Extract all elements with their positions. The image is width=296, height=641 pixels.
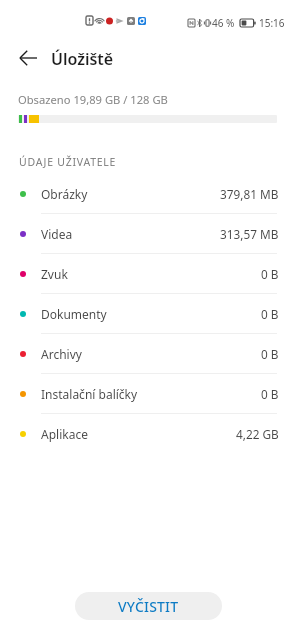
button[interactable]: Videa xyxy=(0,214,296,254)
staticText: Dokumenty xyxy=(41,306,107,322)
staticText: 0 B xyxy=(261,386,279,402)
button[interactable]: Back xyxy=(13,43,43,73)
staticText: 0 B xyxy=(261,266,279,282)
staticText: ÚDAJE UŽIVATELE xyxy=(19,155,117,169)
button[interactable]: Aplikace xyxy=(0,414,296,454)
staticText: Videa xyxy=(41,226,73,242)
staticText: VYČISTIT xyxy=(118,597,179,616)
staticText: Obrázky xyxy=(41,186,88,202)
button[interactable]: Dokumenty xyxy=(0,294,296,334)
button[interactable]: Obrázky xyxy=(0,174,296,214)
staticText: 46 % xyxy=(212,16,235,30)
staticText: Obsazeno 19,89 GB / 128 GB xyxy=(18,92,168,107)
staticText: Archivy xyxy=(41,346,82,362)
staticText: Zvuk xyxy=(41,266,68,282)
button[interactable]: VYČISTIT xyxy=(75,592,222,620)
staticText: Instalační balíčky xyxy=(41,386,138,402)
staticText: 0 B xyxy=(261,306,279,322)
staticText: 0 B xyxy=(261,346,279,362)
staticText: Aplikace xyxy=(41,426,88,442)
button[interactable]: Archivy xyxy=(0,334,296,374)
staticText: 4,22 GB xyxy=(236,426,279,442)
staticText: 313,57 MB xyxy=(220,226,279,242)
staticText: Úložiště xyxy=(51,48,114,70)
staticText: 15:16 xyxy=(259,16,285,30)
button[interactable]: Instalační balíčky xyxy=(0,374,296,414)
button[interactable]: Zvuk xyxy=(0,254,296,294)
staticText: 379,81 MB xyxy=(220,186,279,202)
